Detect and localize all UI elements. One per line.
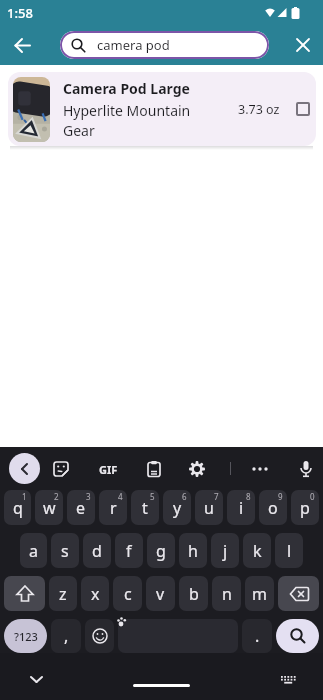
staticText: h	[188, 540, 198, 562]
button[interactable]: w	[33, 490, 65, 525]
button[interactable]: d	[81, 533, 113, 568]
staticText: y	[173, 497, 182, 519]
staticText: 5	[150, 491, 155, 502]
button[interactable]: m	[243, 576, 276, 611]
button[interactable]: c	[111, 576, 144, 611]
staticText: s	[61, 540, 69, 562]
button[interactable]: ?123	[2, 619, 49, 653]
staticText: 1	[22, 491, 27, 502]
button[interactable]: g	[145, 533, 177, 568]
staticText: k	[253, 540, 262, 562]
button[interactable]: f	[113, 533, 145, 568]
button[interactable]	[291, 454, 321, 484]
button[interactable]: e	[65, 490, 97, 525]
staticText: w	[43, 497, 56, 519]
button[interactable]: r	[97, 490, 129, 525]
button[interactable]	[276, 576, 321, 611]
button[interactable]: o	[257, 490, 289, 525]
staticText: r	[110, 497, 117, 519]
button[interactable]: ,	[49, 619, 83, 653]
button[interactable]	[9, 453, 40, 484]
button[interactable]	[296, 102, 310, 116]
button[interactable]	[139, 454, 169, 484]
staticText: ,	[64, 625, 69, 647]
staticText: 9	[278, 491, 283, 502]
staticText: b	[189, 583, 199, 605]
staticText: x	[91, 583, 100, 605]
staticText: c	[124, 583, 132, 605]
staticText: o	[268, 497, 278, 519]
button[interactable]	[182, 454, 212, 484]
staticText: f	[126, 540, 132, 562]
staticText: j	[223, 540, 228, 562]
staticText: 1:58	[7, 4, 33, 22]
staticText: v	[156, 583, 165, 605]
button[interactable]: a	[18, 533, 49, 568]
button[interactable]: y	[161, 490, 193, 525]
staticText: ?123	[14, 629, 38, 644]
button[interactable]: s	[49, 533, 81, 568]
button[interactable]: x	[79, 576, 111, 611]
staticText: Hyperlite Mountain Gear	[63, 101, 191, 140]
staticText: .	[255, 625, 260, 647]
button[interactable]: k	[241, 533, 273, 568]
staticText: 0	[310, 491, 315, 502]
staticText: GIF	[99, 462, 118, 477]
button[interactable]	[16, 663, 56, 697]
button[interactable]: v	[144, 576, 177, 611]
button[interactable]	[268, 664, 308, 698]
staticText: 3	[86, 491, 91, 502]
staticText: g	[156, 540, 166, 562]
button[interactable]: l	[273, 533, 305, 568]
button[interactable]: n	[210, 576, 243, 611]
staticText: 2	[54, 491, 59, 502]
staticText: m	[252, 583, 267, 605]
staticText: z	[59, 583, 67, 605]
staticText: d	[92, 540, 102, 562]
button[interactable]: GIF	[93, 454, 123, 484]
staticText: e	[76, 497, 86, 519]
button[interactable]	[116, 619, 240, 653]
button[interactable]	[245, 454, 275, 484]
button[interactable]: .	[240, 619, 274, 653]
button[interactable]: j	[209, 533, 241, 568]
staticText: u	[204, 497, 214, 519]
button[interactable]	[0, 25, 44, 65]
button[interactable]	[274, 619, 321, 653]
button[interactable]	[83, 619, 116, 653]
staticText: i	[239, 497, 244, 519]
button[interactable]	[283, 25, 323, 65]
staticText: 4	[118, 491, 123, 502]
button[interactable]: i	[225, 490, 257, 525]
staticText: Camera Pod Large	[63, 79, 190, 98]
button[interactable]: u	[193, 490, 225, 525]
staticText: n	[222, 583, 232, 605]
staticText: 7	[214, 491, 219, 502]
button[interactable]: Camera Pod Large	[8, 72, 316, 146]
staticText: a	[29, 540, 38, 562]
button[interactable]: t	[129, 490, 161, 525]
staticText: t	[142, 497, 148, 519]
button[interactable]: p	[289, 490, 321, 525]
staticText: q	[13, 497, 23, 519]
staticText: 8	[246, 491, 251, 502]
button[interactable]	[2, 576, 47, 611]
button[interactable]	[46, 454, 76, 484]
staticText: 3.73 oz	[238, 101, 280, 118]
button[interactable]: z	[47, 576, 79, 611]
button[interactable]: q	[2, 490, 33, 525]
staticText: p	[300, 497, 310, 519]
staticText: camera pod	[97, 36, 170, 54]
button[interactable]: b	[177, 576, 210, 611]
staticText: 6	[182, 491, 187, 502]
button[interactable]: h	[177, 533, 209, 568]
button[interactable]: camera pod	[60, 31, 269, 59]
staticText: l	[287, 540, 292, 562]
